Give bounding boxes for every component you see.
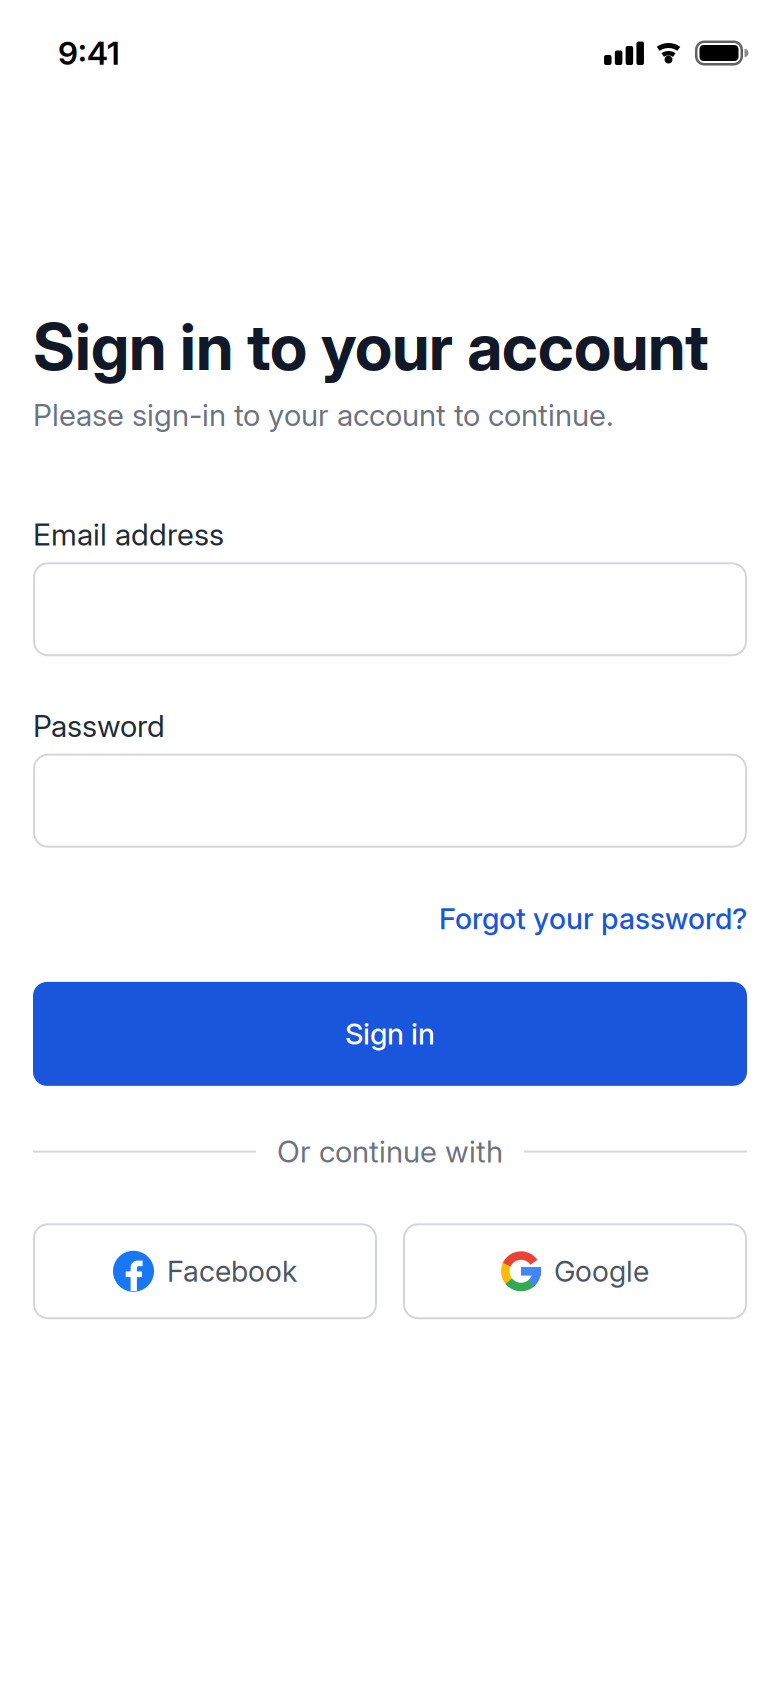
button[interactable]: Forgot your password?: [439, 902, 747, 936]
staticText: 9:41: [58, 34, 120, 72]
staticText: Sign in: [345, 1017, 435, 1051]
button[interactable]: Sign in: [33, 982, 747, 1086]
staticText: Password: [33, 708, 165, 744]
staticText: Email address: [33, 517, 224, 552]
staticText: Facebook: [167, 1254, 297, 1288]
staticText: Or continue with: [277, 1134, 503, 1169]
staticText: Google: [554, 1254, 649, 1288]
staticText: Sign in to your account: [33, 309, 709, 384]
button[interactable]: [33, 754, 747, 848]
button[interactable]: Facebook: [33, 1223, 377, 1319]
staticText: Please sign-in to your account to contin…: [33, 397, 614, 433]
button[interactable]: [33, 562, 747, 656]
button[interactable]: Google: [403, 1223, 747, 1319]
staticText: Forgot your password?: [439, 902, 747, 936]
